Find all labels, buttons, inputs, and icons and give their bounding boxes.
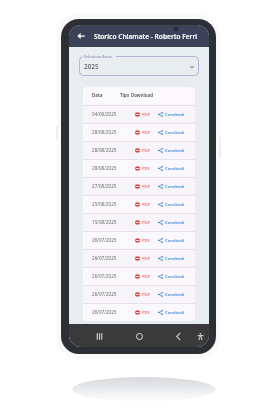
staticText: PDF (142, 201, 151, 207)
staticText: Condividi (165, 111, 185, 117)
button[interactable]: 25/08/2025 (83, 195, 195, 213)
button[interactable]: 27/08/2025 (83, 177, 195, 195)
staticText: PDF (142, 165, 151, 171)
button[interactable]: 26/07/2025 (83, 267, 195, 285)
staticText: 26/07/2025 (92, 273, 117, 279)
staticText: PDF (142, 273, 151, 279)
staticText: Condividi (165, 201, 185, 207)
staticText: Condividi (165, 219, 185, 225)
staticText: Condividi (165, 291, 185, 297)
staticText: 28/08/2025 (92, 147, 117, 153)
button[interactable]: Back (74, 29, 88, 43)
button[interactable]: 04/09/2025 (83, 105, 195, 123)
button[interactable]: 28/08/2025 (83, 141, 195, 159)
staticText: PDF (142, 237, 151, 243)
staticText: PDF (142, 309, 151, 315)
staticText: PDF (142, 219, 151, 225)
staticText: 28/08/2025 (92, 129, 117, 135)
button[interactable]: Seleziona Anno (79, 56, 199, 76)
button[interactable]: 26/07/2025 (83, 303, 195, 321)
staticText: Condividi (165, 273, 185, 279)
staticText: Download (131, 92, 153, 98)
staticText: Tipo (120, 92, 130, 98)
button[interactable]: 26/07/2025 (83, 231, 195, 249)
staticText: Condividi (165, 183, 185, 189)
staticText: Seleziona Anno (84, 54, 112, 59)
staticText: Condividi (165, 237, 185, 243)
staticText: 2025 (84, 62, 99, 71)
staticText: 26/07/2025 (92, 255, 117, 261)
button[interactable]: 26/07/2025 (83, 285, 195, 303)
staticText: PDF (142, 147, 151, 153)
button[interactable]: 28/08/2025 (83, 159, 195, 177)
staticText: 04/09/2025 (92, 111, 117, 117)
staticText: 26/07/2025 (92, 309, 117, 315)
button[interactable]: Back (171, 329, 185, 343)
button[interactable]: 15/08/2025 (83, 213, 195, 231)
button[interactable]: Accessibility (193, 329, 207, 343)
button[interactable]: 28/08/2025 (83, 123, 195, 141)
staticText: Storico Chiamate - Roberto Ferri (94, 32, 198, 41)
staticText: Condividi (165, 309, 185, 315)
staticText: PDF (142, 111, 151, 117)
staticText: Condividi (165, 165, 185, 171)
staticText: PDF (142, 183, 151, 189)
staticText: 26/07/2025 (92, 291, 117, 297)
staticText: Condividi (165, 255, 185, 261)
staticText: 27/08/2025 (92, 183, 117, 189)
staticText: Data (92, 92, 103, 98)
staticText: Condividi (165, 129, 185, 135)
staticText: 15/08/2025 (92, 219, 117, 225)
staticText: PDF (142, 291, 151, 297)
staticText: PDF (142, 129, 151, 135)
button[interactable]: Home (132, 329, 146, 343)
staticText: 28/08/2025 (92, 165, 117, 171)
staticText: 25/08/2025 (92, 201, 117, 207)
staticText: PDF (142, 255, 151, 261)
staticText: Condividi (165, 147, 185, 153)
staticText: 26/07/2025 (92, 237, 117, 243)
button[interactable]: Recent apps (92, 329, 106, 343)
button[interactable]: 26/07/2025 (83, 249, 195, 267)
